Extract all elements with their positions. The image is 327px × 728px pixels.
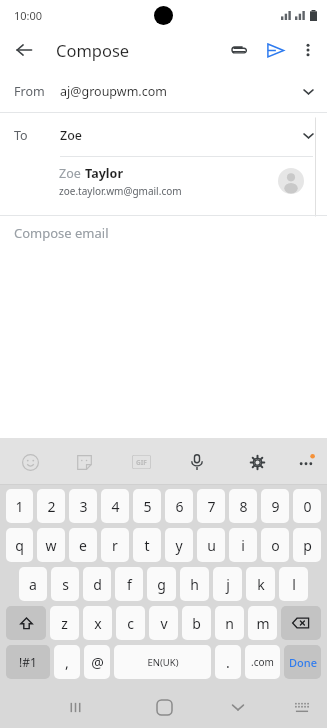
staticText: 4 <box>111 497 120 516</box>
button[interactable]: Attach file <box>221 32 257 68</box>
button[interactable]: @ <box>84 645 110 679</box>
button[interactable]: Stickers <box>70 448 98 476</box>
button[interactable]: More <box>292 448 320 476</box>
button[interactable]: o <box>261 528 289 562</box>
staticText: Zoe <box>59 165 85 182</box>
staticText: 10:00 <box>14 8 43 23</box>
staticText: d <box>93 575 102 594</box>
button[interactable]: c <box>116 606 145 640</box>
staticText: @ <box>91 653 104 672</box>
staticText: h <box>190 575 199 594</box>
button[interactable]: r <box>101 528 129 562</box>
staticText: r <box>112 536 118 555</box>
button[interactable]: 0 <box>293 489 321 523</box>
button[interactable]: Backspace <box>281 606 321 640</box>
button[interactable]: More options <box>293 35 323 65</box>
staticText: zoe.taylor.wm@gmail.com <box>59 184 182 198</box>
button[interactable]: . <box>215 645 241 679</box>
button[interactable]: t <box>133 528 161 562</box>
button[interactable]: 4 <box>101 489 129 523</box>
button[interactable]: .com <box>245 645 280 679</box>
staticText: v <box>160 614 168 633</box>
staticText: 8 <box>239 497 248 516</box>
button[interactable]: x <box>83 606 112 640</box>
button[interactable]: Zoe <box>0 157 327 205</box>
staticText: To <box>14 127 28 144</box>
button[interactable]: p <box>293 528 321 562</box>
staticText: Taylor <box>85 165 123 182</box>
staticText: .com <box>251 655 274 669</box>
staticText: p <box>303 536 312 555</box>
staticText: o <box>271 536 280 555</box>
button[interactable]: 8 <box>229 489 257 523</box>
button[interactable]: 2 <box>37 489 65 523</box>
button[interactable]: l <box>279 567 308 601</box>
button[interactable]: k <box>246 567 275 601</box>
staticText: GIF <box>136 458 147 467</box>
staticText: !#1 <box>19 654 37 670</box>
button[interactable]: n <box>215 606 244 640</box>
staticText: f <box>127 575 132 594</box>
staticText: , <box>65 653 69 672</box>
button[interactable]: i <box>229 528 257 562</box>
button[interactable]: b <box>182 606 211 640</box>
button[interactable]: w <box>37 528 65 562</box>
button[interactable]: e <box>69 528 97 562</box>
button[interactable]: d <box>83 567 111 601</box>
staticText: x <box>94 614 102 633</box>
button[interactable]: Home <box>147 690 181 724</box>
button[interactable]: Emoji <box>16 448 44 476</box>
button[interactable]: Send <box>257 32 293 68</box>
button[interactable]: q <box>6 528 33 562</box>
button[interactable]: 3 <box>69 489 97 523</box>
button[interactable]: Shift <box>6 606 46 640</box>
button[interactable]: 5 <box>133 489 161 523</box>
button[interactable]: u <box>197 528 225 562</box>
staticText: 6 <box>175 497 184 516</box>
button[interactable]: Change keyboard <box>287 692 317 722</box>
button[interactable]: Compose email <box>0 216 327 250</box>
staticText: t <box>144 536 150 555</box>
button[interactable]: Done <box>284 645 321 679</box>
button[interactable]: 7 <box>197 489 225 523</box>
button[interactable]: s <box>51 567 79 601</box>
button[interactable]: !#1 <box>6 645 50 679</box>
staticText: 7 <box>207 497 216 516</box>
button[interactable]: 6 <box>165 489 193 523</box>
staticText: k <box>257 575 265 594</box>
staticText: 2 <box>47 497 56 516</box>
staticText: From <box>14 83 45 100</box>
button[interactable]: g <box>147 567 176 601</box>
staticText: Done <box>289 655 317 670</box>
button[interactable]: To <box>0 113 327 157</box>
button[interactable]: Keyboard settings <box>243 448 271 476</box>
button[interactable]: z <box>50 606 79 640</box>
button[interactable]: h <box>180 567 209 601</box>
button[interactable]: j <box>213 567 242 601</box>
button[interactable]: a <box>19 567 47 601</box>
button[interactable]: GIF <box>127 448 155 476</box>
button[interactable]: Recents <box>58 690 92 724</box>
button[interactable]: f <box>115 567 143 601</box>
button[interactable]: y <box>165 528 193 562</box>
staticText: EN(UK) <box>147 656 179 669</box>
button[interactable]: EN(UK) <box>114 645 211 679</box>
staticText: s <box>62 575 69 594</box>
button[interactable]: v <box>149 606 178 640</box>
staticText: 0 <box>303 497 312 516</box>
button[interactable]: Voice input <box>183 448 211 476</box>
button[interactable]: 1 <box>6 489 33 523</box>
staticText: Zoe <box>60 127 82 144</box>
button[interactable]: 9 <box>261 489 289 523</box>
staticText: u <box>207 536 216 555</box>
staticText: j <box>226 575 230 594</box>
staticText: . <box>226 653 230 672</box>
staticText: w <box>45 536 57 555</box>
button[interactable]: , <box>54 645 80 679</box>
staticText: g <box>157 575 166 594</box>
button[interactable]: Back <box>7 33 41 67</box>
button[interactable]: From <box>0 70 327 113</box>
button[interactable]: m <box>248 606 277 640</box>
staticText: l <box>292 575 296 594</box>
button[interactable]: Hide keyboard <box>221 690 255 724</box>
